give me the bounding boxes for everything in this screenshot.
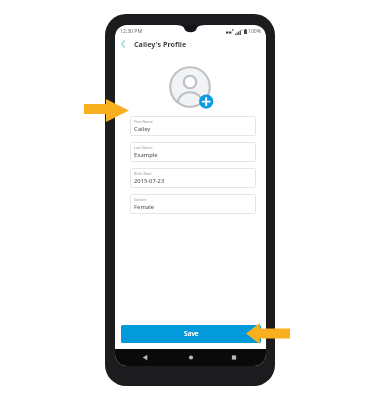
- button[interactable]: Save: [121, 325, 261, 343]
- staticText: 2015-07-23: [134, 177, 165, 185]
- staticText: Gender: [134, 197, 147, 202]
- staticText: First Name: [134, 119, 153, 124]
- staticText: 12:30 PM: [120, 28, 143, 35]
- staticText: Female: [134, 203, 155, 211]
- staticText: 100%: [248, 28, 261, 35]
- button[interactable]: Gender: [130, 194, 256, 214]
- button[interactable]: Birth Date: [130, 168, 256, 188]
- button[interactable]: First Name: [130, 116, 256, 136]
- staticText: Last Name: [134, 145, 153, 150]
- staticText: Example: [134, 151, 158, 159]
- button[interactable]: Change profile photo: [166, 63, 214, 111]
- staticText: Birth Date: [134, 171, 152, 176]
- button[interactable]: Back: [117, 38, 129, 50]
- button[interactable]: Back: [134, 349, 156, 366]
- staticText: Cailey's Profile: [134, 39, 187, 49]
- button[interactable]: Last Name: [130, 142, 256, 162]
- staticText: Cailey: [134, 125, 151, 133]
- staticText: Save: [184, 329, 199, 338]
- button[interactable]: Home: [180, 349, 202, 366]
- button[interactable]: Recent apps: [223, 349, 245, 366]
